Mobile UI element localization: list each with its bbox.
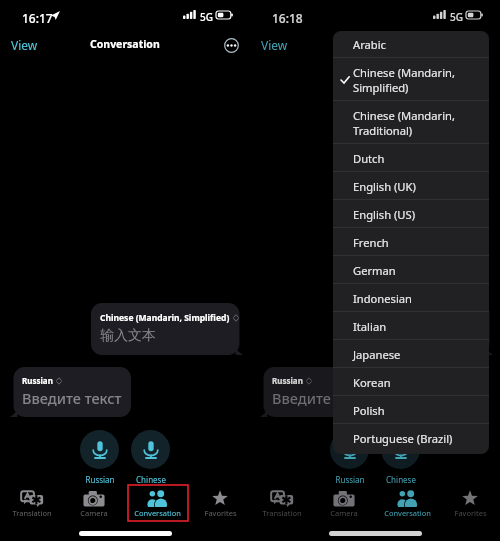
button[interactable]: Korean	[333, 368, 489, 396]
staticText: Indonesian	[353, 291, 413, 306]
button[interactable]: Record Russian	[330, 430, 369, 469]
button[interactable]: Record Chinese	[381, 430, 420, 469]
button[interactable]: Indonesian	[333, 284, 489, 312]
staticText: 16:18	[272, 10, 303, 26]
staticText: Translation	[12, 508, 52, 518]
staticText: Russian	[22, 375, 53, 386]
staticText: 输入文本	[350, 327, 406, 345]
staticText: Dutch	[353, 151, 385, 166]
button[interactable]: Translation	[1, 489, 63, 519]
staticText: Russian	[85, 474, 115, 485]
staticText: Camera	[330, 508, 358, 518]
staticText: Chinese (Mandarin, Simplified)	[350, 312, 480, 324]
staticText: Favorites	[454, 508, 487, 518]
button[interactable]: View	[258, 33, 290, 57]
button[interactable]: Camera	[313, 489, 375, 519]
staticText: Conversation	[134, 508, 181, 518]
button[interactable]: Russian	[10, 367, 131, 417]
staticText: Portuguese (Brazil)	[353, 431, 453, 446]
staticText: Chinese (Mandarin, Simplified)	[353, 65, 455, 95]
staticText: German	[353, 263, 396, 278]
staticText: Введите текст	[22, 388, 122, 408]
staticText: 5G	[200, 10, 213, 24]
staticText: Введите текст	[272, 388, 372, 408]
staticText: French	[353, 235, 389, 250]
button[interactable]: Conversation	[126, 489, 188, 519]
staticText: English (US)	[353, 207, 416, 222]
button[interactable]: German	[333, 256, 489, 284]
staticText: 16:17	[22, 10, 53, 26]
staticText: Italian	[353, 319, 387, 334]
staticText: View	[11, 37, 38, 53]
button[interactable]: French	[333, 228, 489, 256]
staticText: Chinese	[136, 474, 166, 485]
staticText: Chinese (Mandarin, Traditional)	[353, 108, 455, 138]
staticText: 5G	[450, 10, 463, 24]
button[interactable]: More options	[224, 38, 239, 53]
button[interactable]: Chinese (Mandarin, Simplified)	[91, 303, 243, 355]
staticText: Translation	[262, 508, 302, 518]
button[interactable]: Chinese (Mandarin, Traditional)	[333, 101, 489, 144]
staticText: Chinese	[386, 474, 416, 485]
staticText: Polish	[353, 403, 385, 418]
button[interactable]: English (UK)	[333, 172, 489, 200]
button[interactable]: Conversation	[376, 489, 438, 519]
staticText: Arabic	[353, 37, 386, 52]
staticText: Conversation	[340, 37, 410, 51]
button[interactable]: English (US)	[333, 200, 489, 228]
button[interactable]: Translation	[251, 489, 313, 519]
button[interactable]: View	[8, 33, 40, 57]
staticText: Conversation	[90, 37, 160, 51]
button[interactable]: Japanese	[333, 340, 489, 368]
button[interactable]: Chinese (Mandarin, Simplified)	[341, 303, 493, 355]
staticText: Russian	[335, 474, 365, 485]
button[interactable]: Arabic	[333, 31, 489, 58]
staticText: Japanese	[353, 347, 401, 362]
button[interactable]: Italian	[333, 312, 489, 340]
button[interactable]: Portuguese (Brazil)	[333, 424, 489, 452]
staticText: View	[261, 37, 288, 53]
button[interactable]: Favorites	[439, 489, 500, 519]
staticText: Korean	[353, 375, 391, 390]
staticText: 输入文本	[100, 327, 156, 345]
staticText: English (UK)	[353, 179, 416, 194]
button[interactable]: Camera	[63, 489, 125, 519]
button[interactable]: Record Russian	[80, 430, 119, 469]
staticText: Russian	[272, 375, 303, 386]
staticText: Conversation	[384, 508, 431, 518]
button[interactable]: Polish	[333, 396, 489, 424]
button[interactable]: Dutch	[333, 144, 489, 172]
button[interactable]: Chinese (Mandarin, Simplified)	[333, 58, 489, 101]
button[interactable]: Favorites	[189, 489, 251, 519]
staticText: Camera	[80, 508, 108, 518]
staticText: Favorites	[204, 508, 237, 518]
staticText: Chinese (Mandarin, Simplified)	[100, 312, 230, 324]
button[interactable]: Russian	[260, 367, 381, 417]
button[interactable]: Record Chinese	[131, 430, 170, 469]
